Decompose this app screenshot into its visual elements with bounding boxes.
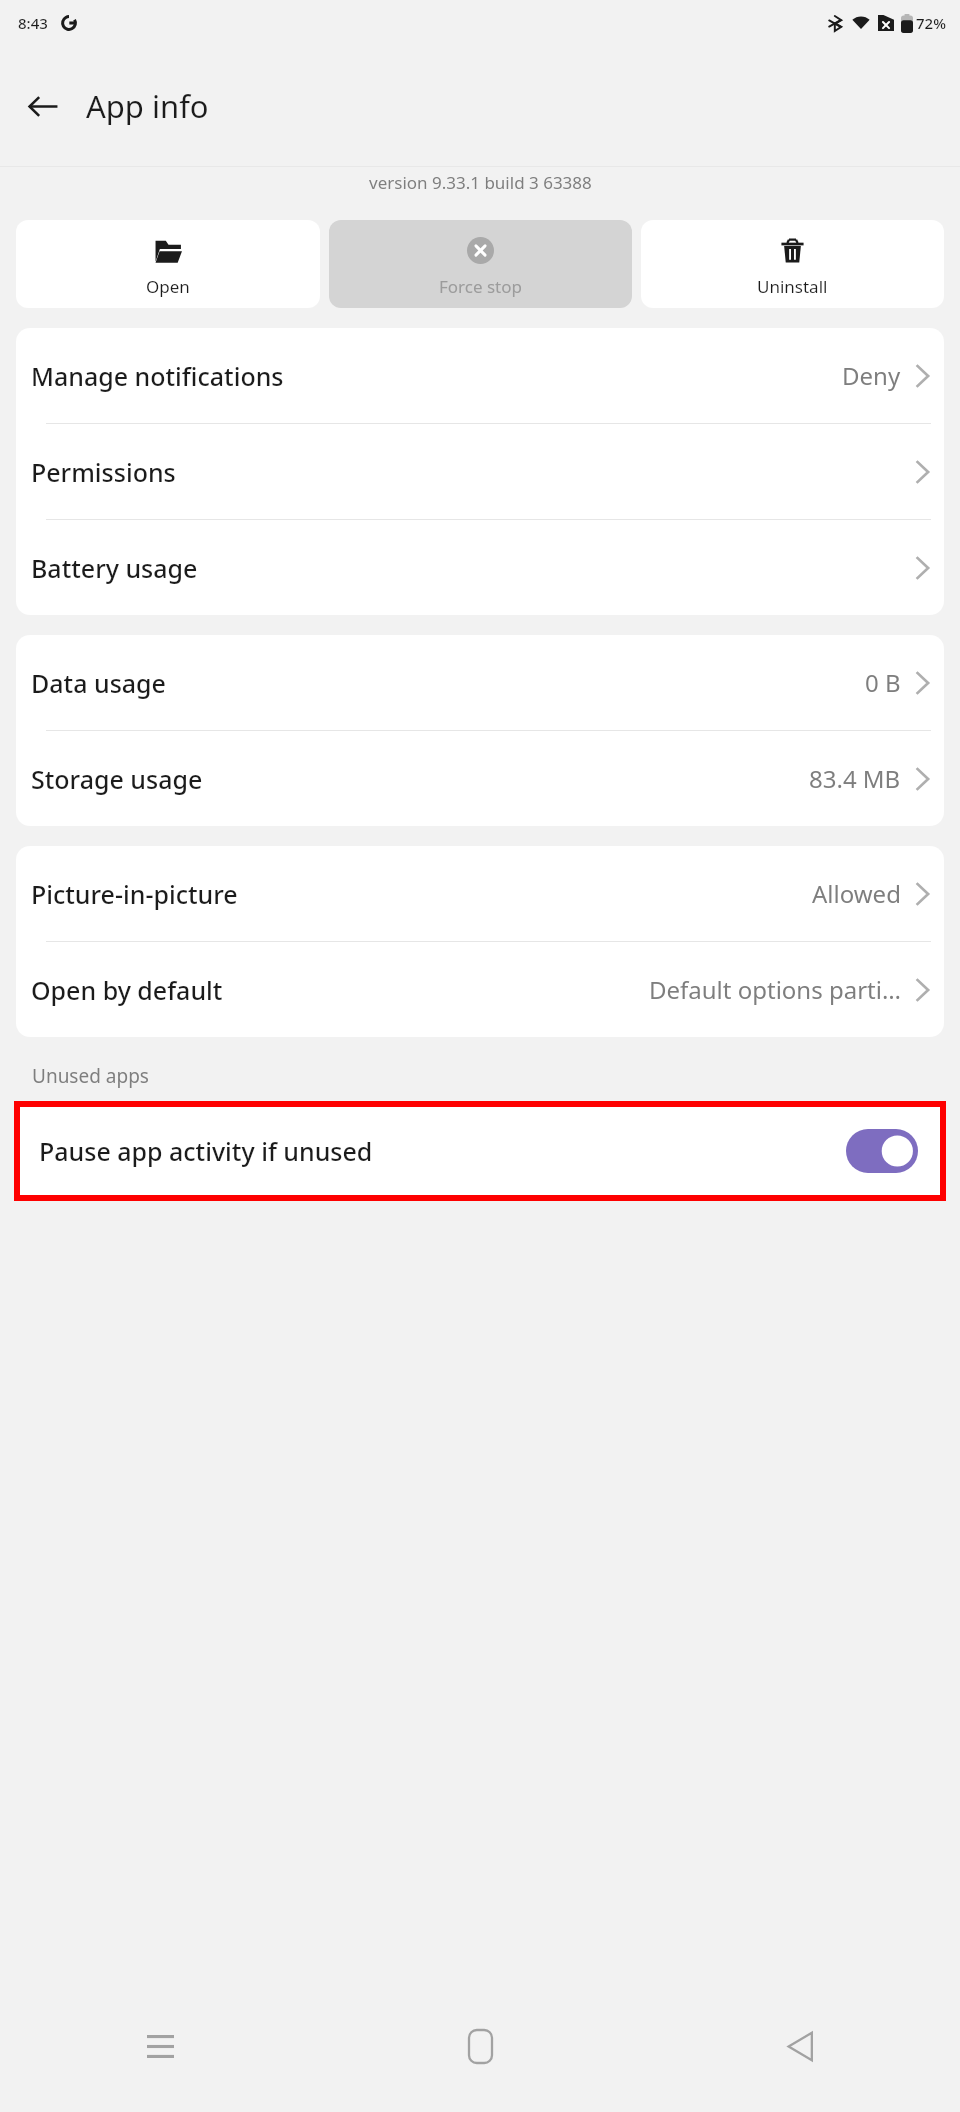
button[interactable]: Open by default: [16, 942, 944, 1037]
staticText: Default options parti…: [649, 973, 901, 1006]
button[interactable]: Uninstall: [641, 220, 944, 308]
staticText: 8:43: [18, 13, 48, 33]
staticText: Deny: [842, 359, 901, 392]
staticText: Permissions: [31, 455, 176, 489]
button[interactable]: Pause app activity if unused toggle: [846, 1129, 918, 1173]
staticText: Data usage: [31, 666, 166, 700]
button[interactable]: Force stop: [329, 220, 632, 308]
button[interactable]: Battery usage: [16, 520, 944, 615]
button[interactable]: Storage usage: [16, 731, 944, 826]
button[interactable]: Recent apps: [0, 1980, 320, 2112]
staticText: Battery usage: [31, 551, 198, 585]
staticText: Storage usage: [31, 762, 203, 796]
staticText: 83.4 MB: [809, 762, 901, 795]
staticText: 72%: [916, 13, 946, 33]
button[interactable]: Permissions: [16, 424, 944, 519]
button[interactable]: Manage notifications: [16, 328, 944, 423]
button[interactable]: Open: [16, 220, 320, 308]
button[interactable]: Data usage: [16, 635, 944, 730]
staticText: Picture-in-picture: [31, 877, 238, 911]
staticText: Pause app activity if unused: [39, 1134, 373, 1168]
button[interactable]: Home: [320, 1980, 640, 2112]
button[interactable]: Picture-in-picture: [16, 846, 944, 941]
staticText: 0 B: [865, 666, 901, 699]
staticText: Allowed: [812, 877, 901, 910]
staticText: Unused apps: [32, 1063, 149, 1089]
staticText: Force stop: [439, 275, 522, 298]
button[interactable]: Pause app activity if unused: [20, 1107, 940, 1195]
button[interactable]: Back: [14, 77, 72, 135]
staticText: Open by default: [31, 973, 223, 1007]
staticText: Manage notifications: [31, 359, 284, 393]
staticText: Open: [146, 275, 190, 298]
staticText: version 9.33.1 build 3 63388: [369, 171, 592, 194]
button[interactable]: Back: [640, 1980, 960, 2112]
staticText: App info: [86, 85, 209, 127]
staticText: Uninstall: [757, 275, 828, 298]
